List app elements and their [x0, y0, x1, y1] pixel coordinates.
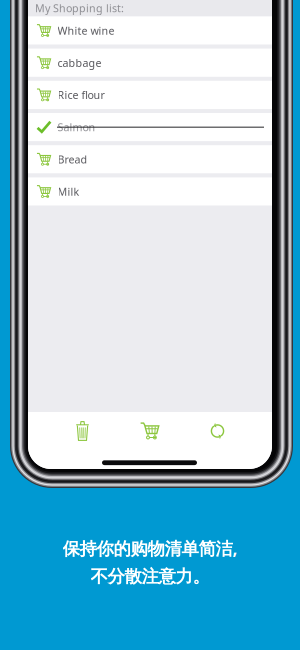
staticText: Bread	[57, 152, 87, 166]
staticText: 不分散注意力。	[90, 566, 209, 587]
staticText: Salmon	[57, 120, 95, 134]
staticText: Rice flour	[57, 88, 104, 102]
staticText: Milk	[57, 184, 79, 199]
button[interactable]: Add to cart	[123, 412, 176, 450]
staticText: 保持你的购物清单简洁,	[62, 537, 237, 560]
button[interactable]: Rice flour	[28, 81, 272, 109]
button[interactable]: Delete list	[56, 412, 109, 450]
button[interactable]: White wine	[28, 16, 272, 45]
staticText: White wine	[57, 23, 114, 38]
staticText: cabbage	[57, 56, 101, 70]
button[interactable]: Refresh list	[191, 412, 244, 450]
button[interactable]: Salmon	[28, 113, 272, 141]
button[interactable]: Milk	[28, 177, 272, 206]
button[interactable]: cabbage	[28, 49, 272, 77]
staticText: My Shopping list:	[35, 1, 124, 15]
button[interactable]: Bread	[28, 145, 272, 173]
